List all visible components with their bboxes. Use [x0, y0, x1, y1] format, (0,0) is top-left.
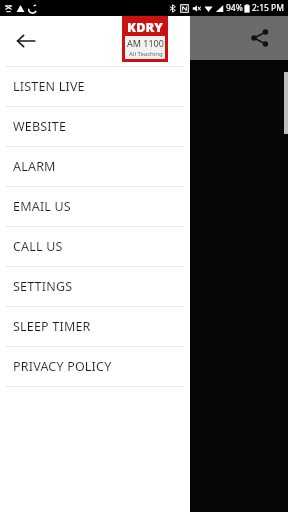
staticText: ALARM: [13, 158, 56, 175]
staticText: CALL US: [13, 238, 63, 255]
staticText: KDRY: [127, 18, 163, 35]
button[interactable]: ALARM: [0, 147, 190, 186]
staticText: SLEEP TIMER: [13, 318, 91, 335]
staticText: 2:15 PM: [252, 2, 284, 14]
staticText: All Teaching: [129, 50, 163, 58]
button[interactable]: CALL US: [0, 227, 190, 266]
button[interactable]: SETTINGS: [0, 267, 190, 306]
staticText: SETTINGS: [13, 278, 73, 295]
staticText: AM 1100: [127, 37, 164, 49]
staticText: LISTEN LIVE: [13, 78, 85, 95]
button[interactable]: PRIVACY POLICY: [0, 347, 190, 386]
staticText: 94%: [226, 2, 243, 14]
button[interactable]: LISTEN LIVE: [0, 67, 190, 106]
button[interactable]: EMAIL US: [0, 187, 190, 226]
staticText: PRIVACY POLICY: [13, 358, 112, 375]
staticText: WEBSITE: [13, 118, 67, 135]
staticText: EMAIL US: [13, 198, 71, 215]
button[interactable]: SLEEP TIMER: [0, 307, 190, 346]
button[interactable]: WEBSITE: [0, 107, 190, 146]
button[interactable]: Back: [8, 23, 44, 59]
button[interactable]: KDRY AM 1100 logo: [124, 18, 166, 60]
button[interactable]: Share: [246, 24, 274, 52]
